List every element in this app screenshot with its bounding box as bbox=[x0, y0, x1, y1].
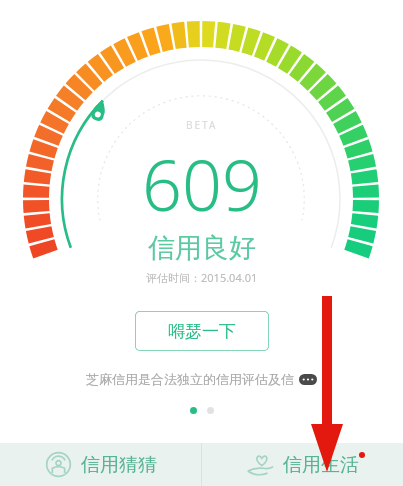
button[interactable]: 信用猜猜 bbox=[0, 443, 201, 486]
button[interactable]: 信用生活 bbox=[202, 443, 403, 486]
staticText: 嘚瑟一下 bbox=[168, 321, 236, 342]
button[interactable]: 嘚瑟一下 bbox=[135, 311, 269, 351]
staticText: 609 bbox=[142, 136, 262, 231]
staticText: BETA bbox=[186, 118, 218, 132]
staticText: 信用生活 bbox=[283, 453, 359, 477]
staticText: 芝麻信用是合法独立的信用评估及信 bbox=[86, 371, 294, 387]
staticText: 信用良好 bbox=[148, 231, 256, 265]
staticText: 信用猜猜 bbox=[81, 453, 157, 477]
staticText: 评估时间：2015.04.01 bbox=[146, 270, 258, 285]
button[interactable]: More bbox=[299, 374, 317, 385]
